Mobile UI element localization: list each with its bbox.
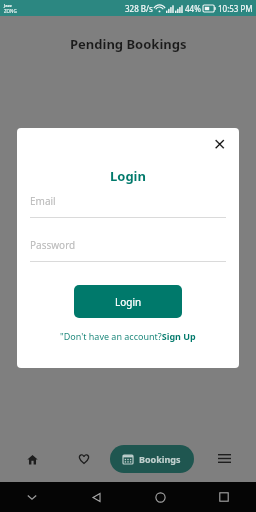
staticText: ZONG bbox=[4, 8, 17, 14]
button[interactable]: Back bbox=[64, 482, 128, 512]
staticText: "Don't have an account?Sign Up bbox=[60, 330, 196, 342]
staticText: Jazz bbox=[4, 3, 12, 8]
button[interactable]: Home bbox=[6, 439, 58, 479]
staticText: Email bbox=[30, 194, 56, 208]
staticText: Bookings bbox=[139, 453, 181, 465]
button[interactable]: Hide bbox=[0, 482, 64, 512]
button[interactable]: "Don't have an account?Sign Up bbox=[56, 328, 200, 344]
staticText: Pending Bookings bbox=[70, 35, 187, 53]
button[interactable]: Menu bbox=[204, 439, 244, 479]
button[interactable]: Close bbox=[207, 131, 233, 157]
button[interactable]: Recents bbox=[192, 482, 256, 512]
staticText: Password bbox=[30, 238, 76, 252]
staticText: 44% bbox=[185, 3, 201, 14]
button[interactable]: Favourites bbox=[58, 439, 110, 479]
button[interactable]: Bookings bbox=[110, 445, 194, 473]
staticText: Login bbox=[115, 295, 142, 309]
button[interactable]: Login bbox=[74, 285, 182, 318]
staticText: ✕ bbox=[213, 135, 227, 154]
staticText: 328 B/s bbox=[125, 3, 153, 14]
staticText: Login bbox=[110, 167, 146, 185]
button[interactable]: Home bbox=[128, 482, 192, 512]
staticText: 10:53 PM bbox=[218, 3, 253, 14]
